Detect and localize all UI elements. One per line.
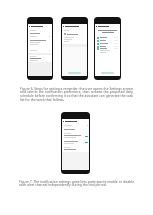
button[interactable]: Continue xyxy=(101,72,114,74)
button[interactable] xyxy=(97,36,118,39)
button[interactable]: Back xyxy=(95,24,120,28)
button[interactable] xyxy=(64,135,88,138)
staticText: Figure 6. Steps for setting a reminder: … xyxy=(20,86,133,102)
button[interactable] xyxy=(97,45,118,48)
button[interactable] xyxy=(64,141,88,144)
staticText: Figure 7. The notification settings pane… xyxy=(19,179,134,187)
button[interactable] xyxy=(97,42,118,45)
button[interactable]: Back xyxy=(62,119,89,123)
button[interactable] xyxy=(97,39,118,42)
button[interactable]: Back xyxy=(62,24,87,28)
button[interactable]: Back xyxy=(28,24,52,28)
button[interactable]: Continue xyxy=(68,72,81,74)
button[interactable] xyxy=(97,48,118,53)
